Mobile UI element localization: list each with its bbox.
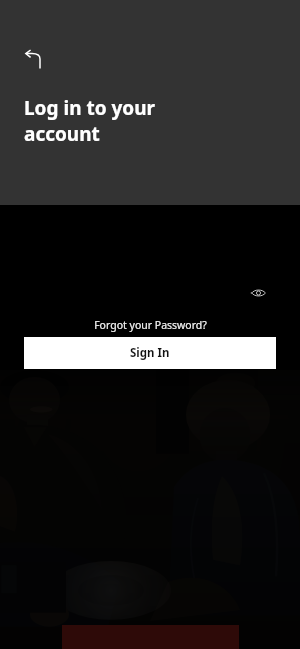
staticText: Sign In [130, 345, 170, 361]
staticText: account [24, 121, 100, 147]
staticText: Log in to your [24, 95, 156, 121]
button[interactable]: Forgot your Password? [0, 315, 300, 335]
staticText: Forgot your Password? [94, 318, 207, 332]
button[interactable]: Back [16, 42, 52, 78]
button[interactable]: Password [24, 263, 276, 297]
button[interactable]: Sign In [24, 337, 276, 369]
button[interactable]: Show password [244, 279, 272, 307]
